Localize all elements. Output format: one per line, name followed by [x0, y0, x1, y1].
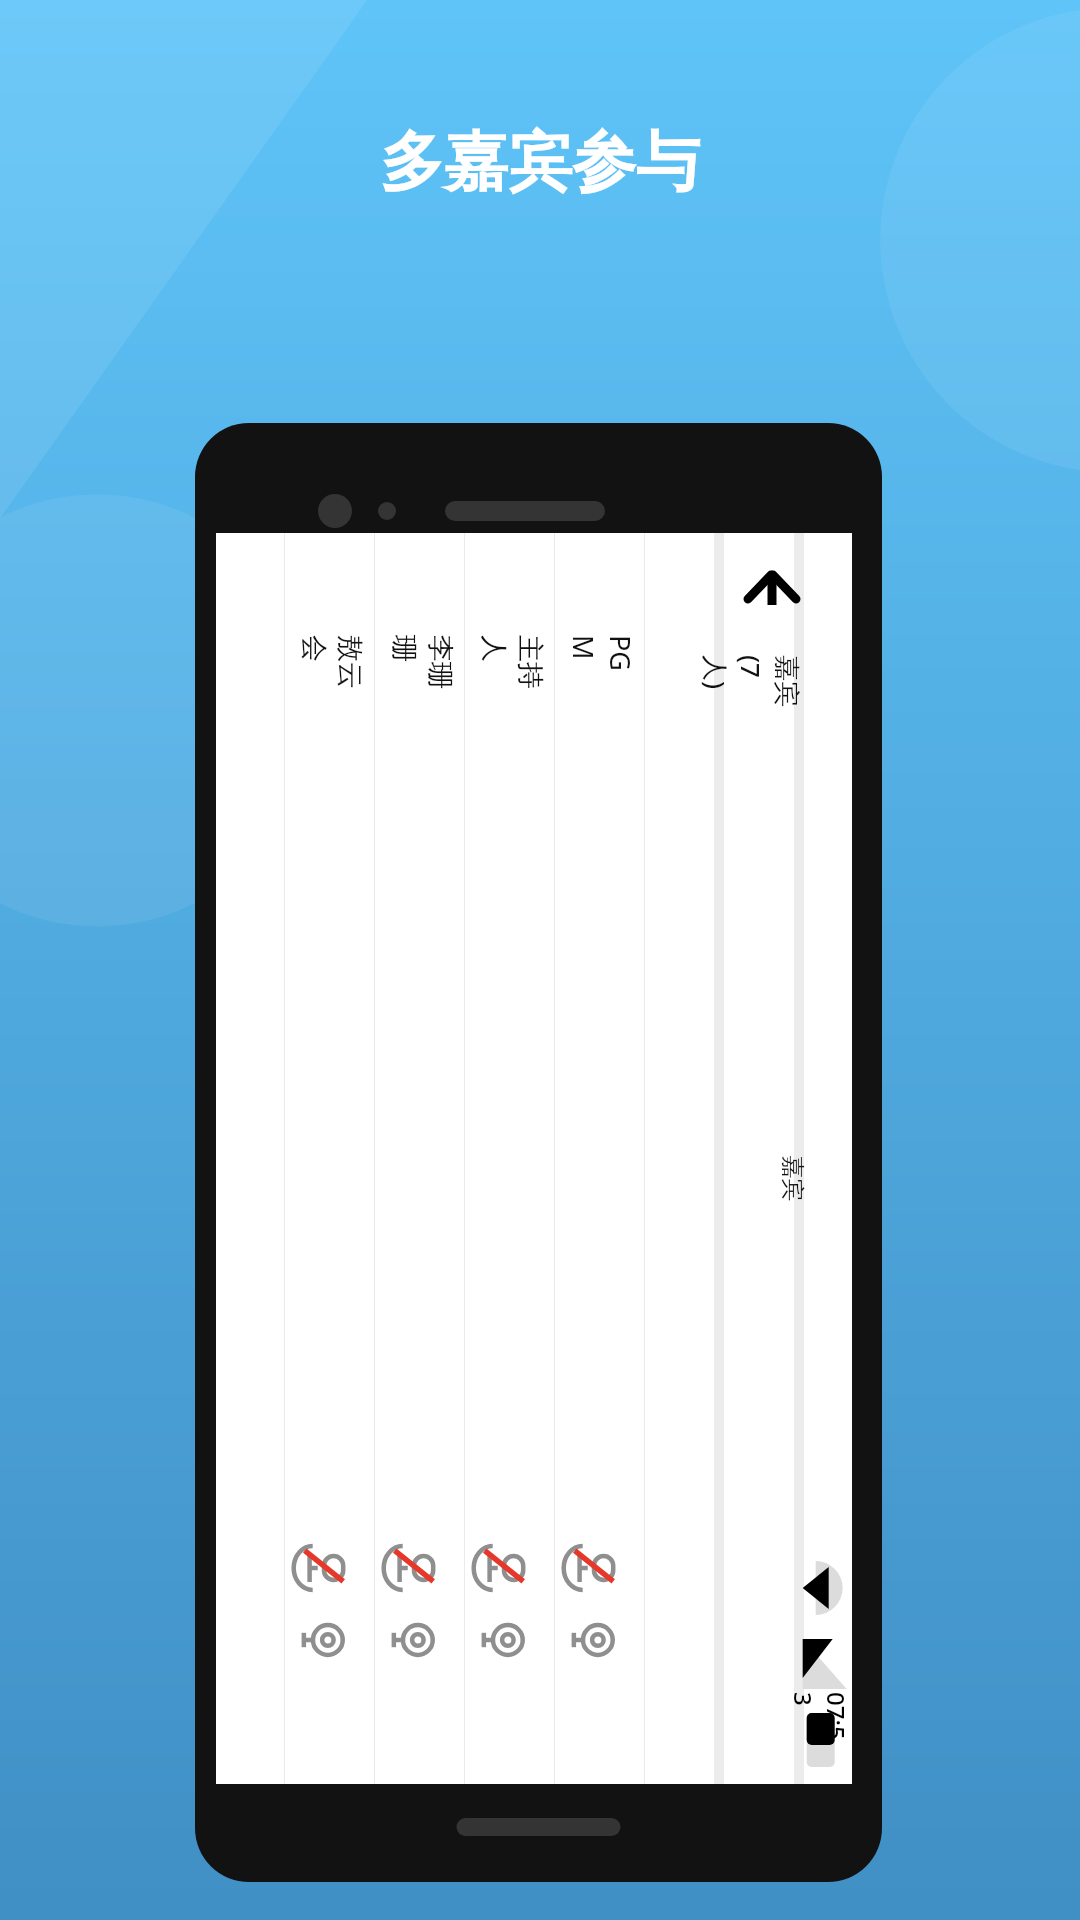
staticText: 李珊珊 — [387, 635, 457, 691]
button[interactable]: Microphone off — [390, 1544, 438, 1592]
button[interactable]: 主持人 — [464, 533, 554, 1784]
staticText: 主持人 — [477, 635, 547, 691]
staticText: 嘉宾 (7人) — [698, 655, 806, 711]
button[interactable]: Camera — [300, 1616, 348, 1664]
button[interactable]: 敖云会 — [284, 533, 374, 1784]
button[interactable]: Camera — [570, 1616, 618, 1664]
button[interactable]: PGM — [554, 533, 644, 1784]
staticText: 07:53 — [787, 1692, 853, 1748]
button[interactable]: Microphone off — [480, 1544, 528, 1592]
staticText: PGM — [565, 635, 639, 691]
button[interactable]: Microphone off — [570, 1544, 618, 1592]
button[interactable]: Camera — [480, 1616, 528, 1664]
staticText: 敖云会 — [297, 635, 367, 691]
button[interactable]: Microphone off — [300, 1544, 348, 1592]
button[interactable]: Camera — [390, 1616, 438, 1664]
staticText: 多嘉宾参与 — [380, 122, 700, 203]
button[interactable]: Back — [744, 561, 800, 617]
button[interactable]: 李珊珊 — [374, 533, 464, 1784]
staticText: 嘉宾 — [777, 1155, 806, 1211]
